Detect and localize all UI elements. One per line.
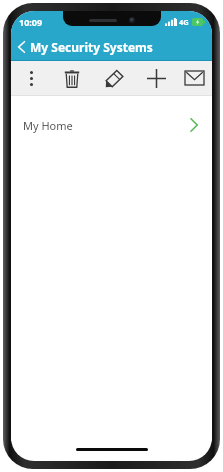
button[interactable]: My Home — [11, 108, 212, 142]
staticText: My Security Systems — [30, 39, 153, 55]
button[interactable]: Edit — [93, 61, 135, 95]
staticText: My Home — [23, 118, 190, 133]
staticText: 10:09 — [19, 16, 43, 28]
button[interactable]: Mail — [177, 61, 212, 95]
button[interactable]: More options — [11, 61, 51, 95]
button[interactable]: My Security Systems — [11, 33, 212, 60]
button[interactable]: Add — [135, 61, 177, 95]
button[interactable]: Delete — [51, 61, 93, 95]
staticText: 4G — [179, 17, 189, 27]
